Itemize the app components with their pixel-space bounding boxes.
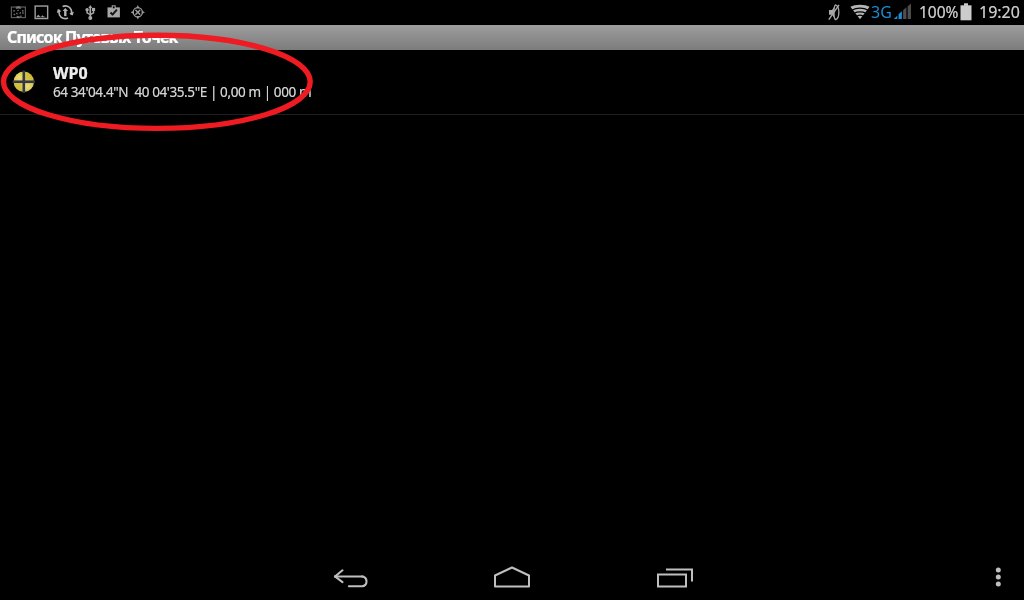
- staticText: 64 34'04.4"N 40 04'35.5"E | 0,00 m | 000…: [53, 83, 312, 101]
- button[interactable]: More options: [982, 546, 1022, 594]
- button[interactable]: WP0: [0, 50, 1024, 114]
- staticText: 19:20: [979, 1, 1020, 23]
- staticText: 100%: [919, 1, 959, 22]
- staticText: Список Путевых Точек: [7, 26, 178, 48]
- button[interactable]: Recents: [651, 545, 699, 593]
- button[interactable]: Back: [327, 546, 375, 594]
- button[interactable]: Home: [488, 544, 536, 592]
- staticText: 3G: [871, 1, 892, 23]
- staticText: WP0: [53, 62, 88, 84]
